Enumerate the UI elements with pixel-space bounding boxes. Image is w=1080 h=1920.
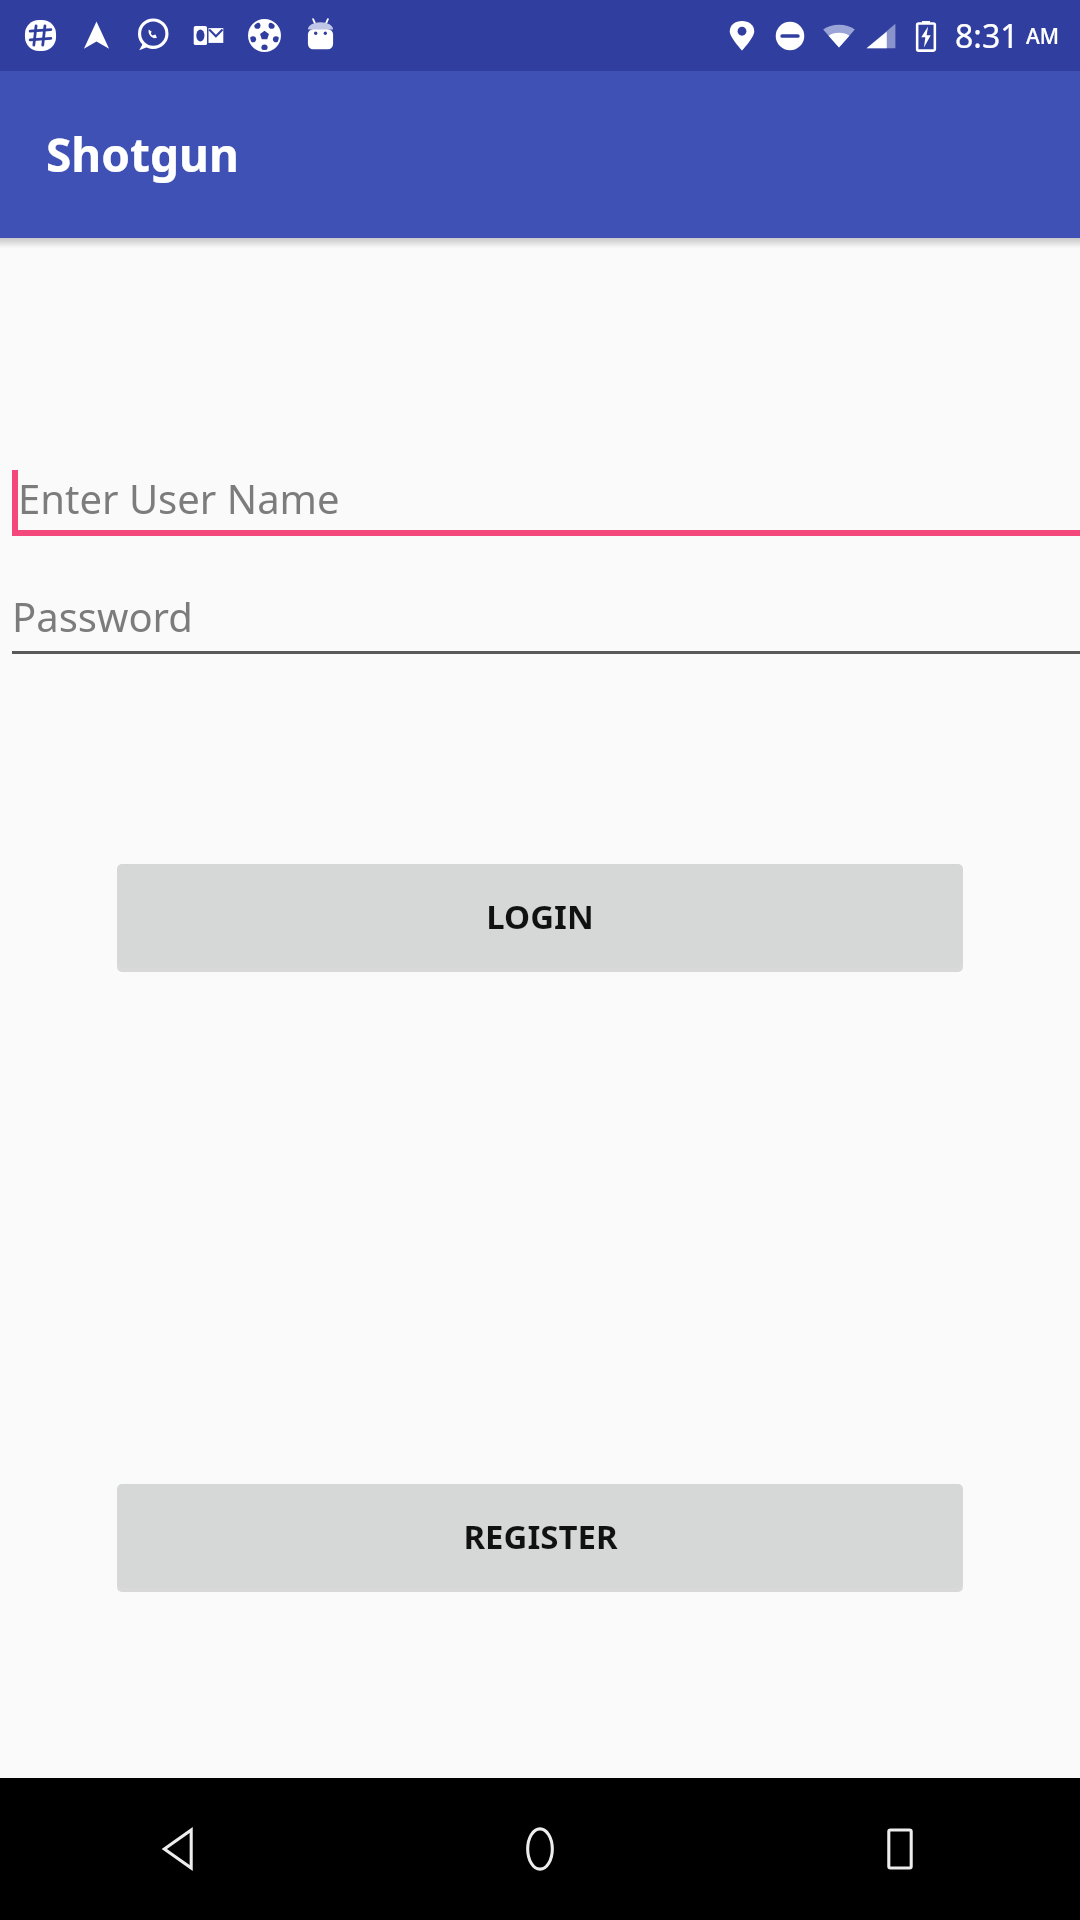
staticText: Shotgun — [46, 123, 239, 186]
button[interactable]: Recents — [720, 1778, 1080, 1920]
button[interactable]: Back — [0, 1778, 360, 1920]
button[interactable]: Home — [360, 1778, 720, 1920]
staticText: Password — [12, 589, 193, 643]
staticText: LOGIN — [486, 894, 594, 939]
button[interactable]: Password — [0, 578, 1080, 654]
staticText: 8:31 — [955, 14, 1019, 58]
button[interactable]: REGISTER — [117, 1484, 963, 1588]
staticText: Enter User Name — [18, 471, 340, 525]
button[interactable]: LOGIN — [117, 864, 963, 968]
staticText: REGISTER — [463, 1514, 618, 1559]
staticText: AM — [1026, 22, 1060, 51]
button[interactable]: Enter User Name — [0, 460, 1080, 536]
